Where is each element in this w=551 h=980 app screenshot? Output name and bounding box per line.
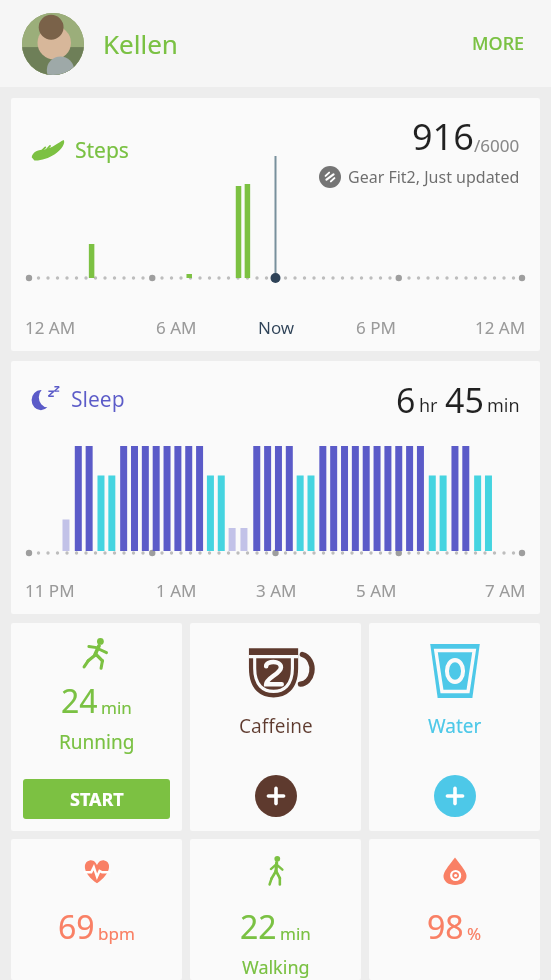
staticText: START <box>70 787 124 812</box>
staticText: Sleep <box>71 385 125 414</box>
staticText: Water <box>428 713 482 739</box>
staticText: /6000 <box>474 134 520 157</box>
button[interactable]: Caffeine <box>190 623 361 831</box>
staticText: 12 AM <box>475 316 526 339</box>
staticText: 6 <box>396 377 416 423</box>
staticText: 22 <box>240 905 277 949</box>
staticText: min <box>487 393 520 418</box>
staticText: bpm <box>98 922 135 945</box>
staticText: 7 AM <box>485 579 526 602</box>
staticText: Gear Fit2, Just updated <box>348 166 520 188</box>
button[interactable]: Add water <box>434 775 476 817</box>
staticText: 12 AM <box>25 316 76 339</box>
staticText: min <box>101 696 132 719</box>
staticText: Kellen <box>103 26 178 61</box>
button[interactable]: 98 <box>369 839 540 980</box>
staticText: 11 PM <box>25 579 75 602</box>
staticText: hr <box>419 393 438 418</box>
staticText: MORE <box>472 31 525 56</box>
button[interactable]: 24 <box>11 623 182 831</box>
staticText: 916 <box>412 112 474 161</box>
staticText: 1 AM <box>156 579 197 602</box>
staticText: 6 PM <box>356 316 396 339</box>
staticText: Steps <box>75 136 129 165</box>
staticText: % <box>467 922 482 945</box>
button[interactable]: Steps <box>11 98 540 351</box>
staticText: 3 AM <box>256 579 297 602</box>
button[interactable]: START <box>23 779 170 819</box>
staticText: 98 <box>427 905 464 949</box>
staticText: 5 AM <box>356 579 397 602</box>
button[interactable]: MORE <box>468 27 529 60</box>
button[interactable]: Sleep <box>11 361 540 614</box>
staticText: 6 AM <box>156 316 197 339</box>
staticText: 45 <box>445 377 484 423</box>
button[interactable]: 22 <box>190 839 361 980</box>
staticText: Now <box>258 316 295 339</box>
button[interactable]: Add caffeine <box>255 775 297 817</box>
button[interactable]: Profile photo <box>22 13 84 75</box>
staticText: min <box>280 922 311 945</box>
staticText: Walking <box>242 955 310 980</box>
staticText: Caffeine <box>239 713 313 739</box>
staticText: 69 <box>58 905 95 949</box>
button[interactable]: Water <box>369 623 540 831</box>
staticText: Running <box>59 729 135 755</box>
button[interactable]: 69 <box>11 839 182 980</box>
staticText: 24 <box>61 679 98 723</box>
